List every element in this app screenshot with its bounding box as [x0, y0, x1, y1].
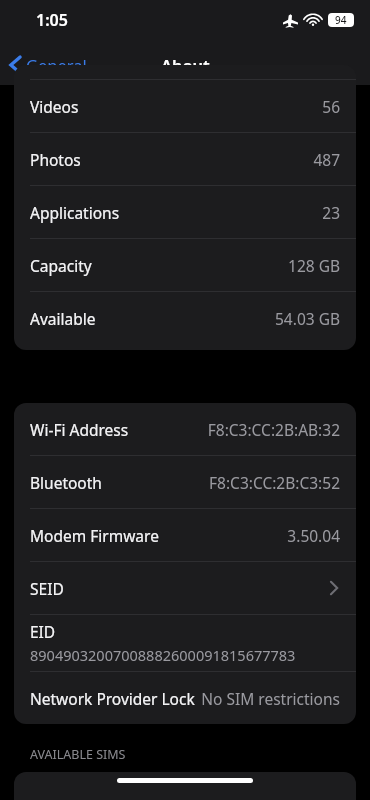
staticText: 23 [322, 202, 340, 223]
staticText: About [161, 54, 210, 76]
button[interactable]: Photos [14, 133, 356, 185]
staticText: 56 [322, 96, 340, 117]
staticText: General [26, 54, 87, 76]
staticText: No SIM restrictions [201, 688, 340, 709]
button[interactable]: EID [14, 615, 356, 671]
staticText: SEID [30, 578, 64, 599]
button[interactable]: Wi-Fi Address [14, 403, 356, 455]
staticText: Modem Firmware [30, 525, 159, 546]
staticText: 128 GB [288, 255, 340, 276]
staticText: Applications [30, 202, 120, 223]
staticText: 1:05 [36, 9, 68, 31]
staticText: Videos [30, 96, 79, 117]
staticText: Wi-Fi Address [30, 419, 129, 440]
button[interactable]: Modem Firmware [14, 509, 356, 561]
staticText: Capacity [30, 255, 92, 276]
staticText: F8:C3:CC:2B:AB:32 [207, 419, 340, 440]
staticText: 3.50.04 [287, 525, 340, 546]
other: Open SEID [330, 581, 338, 595]
button[interactable]: Bluetooth [14, 456, 356, 508]
staticText: 487 [313, 149, 340, 170]
staticText: EID [30, 621, 56, 642]
staticText: 89049032007008882600091815677783 [30, 645, 296, 665]
staticText: 94 [335, 13, 347, 27]
button[interactable]: Applications [14, 186, 356, 238]
button[interactable]: SEID [14, 562, 356, 614]
staticText: Bluetooth [30, 472, 102, 493]
staticText: Available [30, 308, 96, 329]
staticText: AVAILABLE SIMS [30, 746, 126, 763]
staticText: Network Provider Lock [30, 688, 195, 709]
staticText: Photos [30, 149, 81, 170]
button[interactable]: General [6, 50, 91, 80]
staticText: 54.03 GB [274, 308, 340, 329]
button[interactable]: Available [14, 292, 356, 344]
button[interactable]: Videos [14, 80, 356, 132]
staticText: F8:C3:CC:2B:C3:52 [209, 472, 340, 493]
button[interactable]: Capacity [14, 239, 356, 291]
button[interactable]: Network Provider Lock [14, 672, 356, 724]
